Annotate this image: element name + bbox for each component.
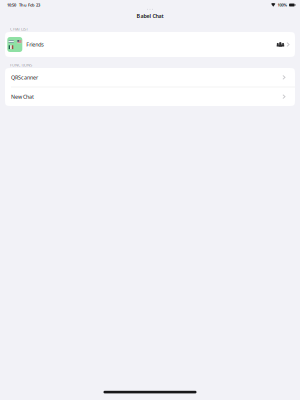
staticText: CHAT LIST — [10, 26, 28, 32]
staticText: Babel Chat — [136, 12, 163, 20]
staticText: New Chat — [11, 93, 34, 100]
button[interactable]: QRScanner — [5, 68, 295, 87]
staticText: Friends — [26, 41, 44, 48]
staticText: Thu Feb 23 — [19, 2, 40, 8]
staticText: FUNCTIONS — [10, 62, 32, 68]
staticText: QRScanner — [11, 74, 38, 81]
button[interactable]: Friends — [5, 32, 295, 57]
staticText: 10:50 — [7, 2, 16, 8]
button[interactable]: New Chat — [5, 87, 295, 106]
staticText: 100% — [277, 2, 287, 8]
